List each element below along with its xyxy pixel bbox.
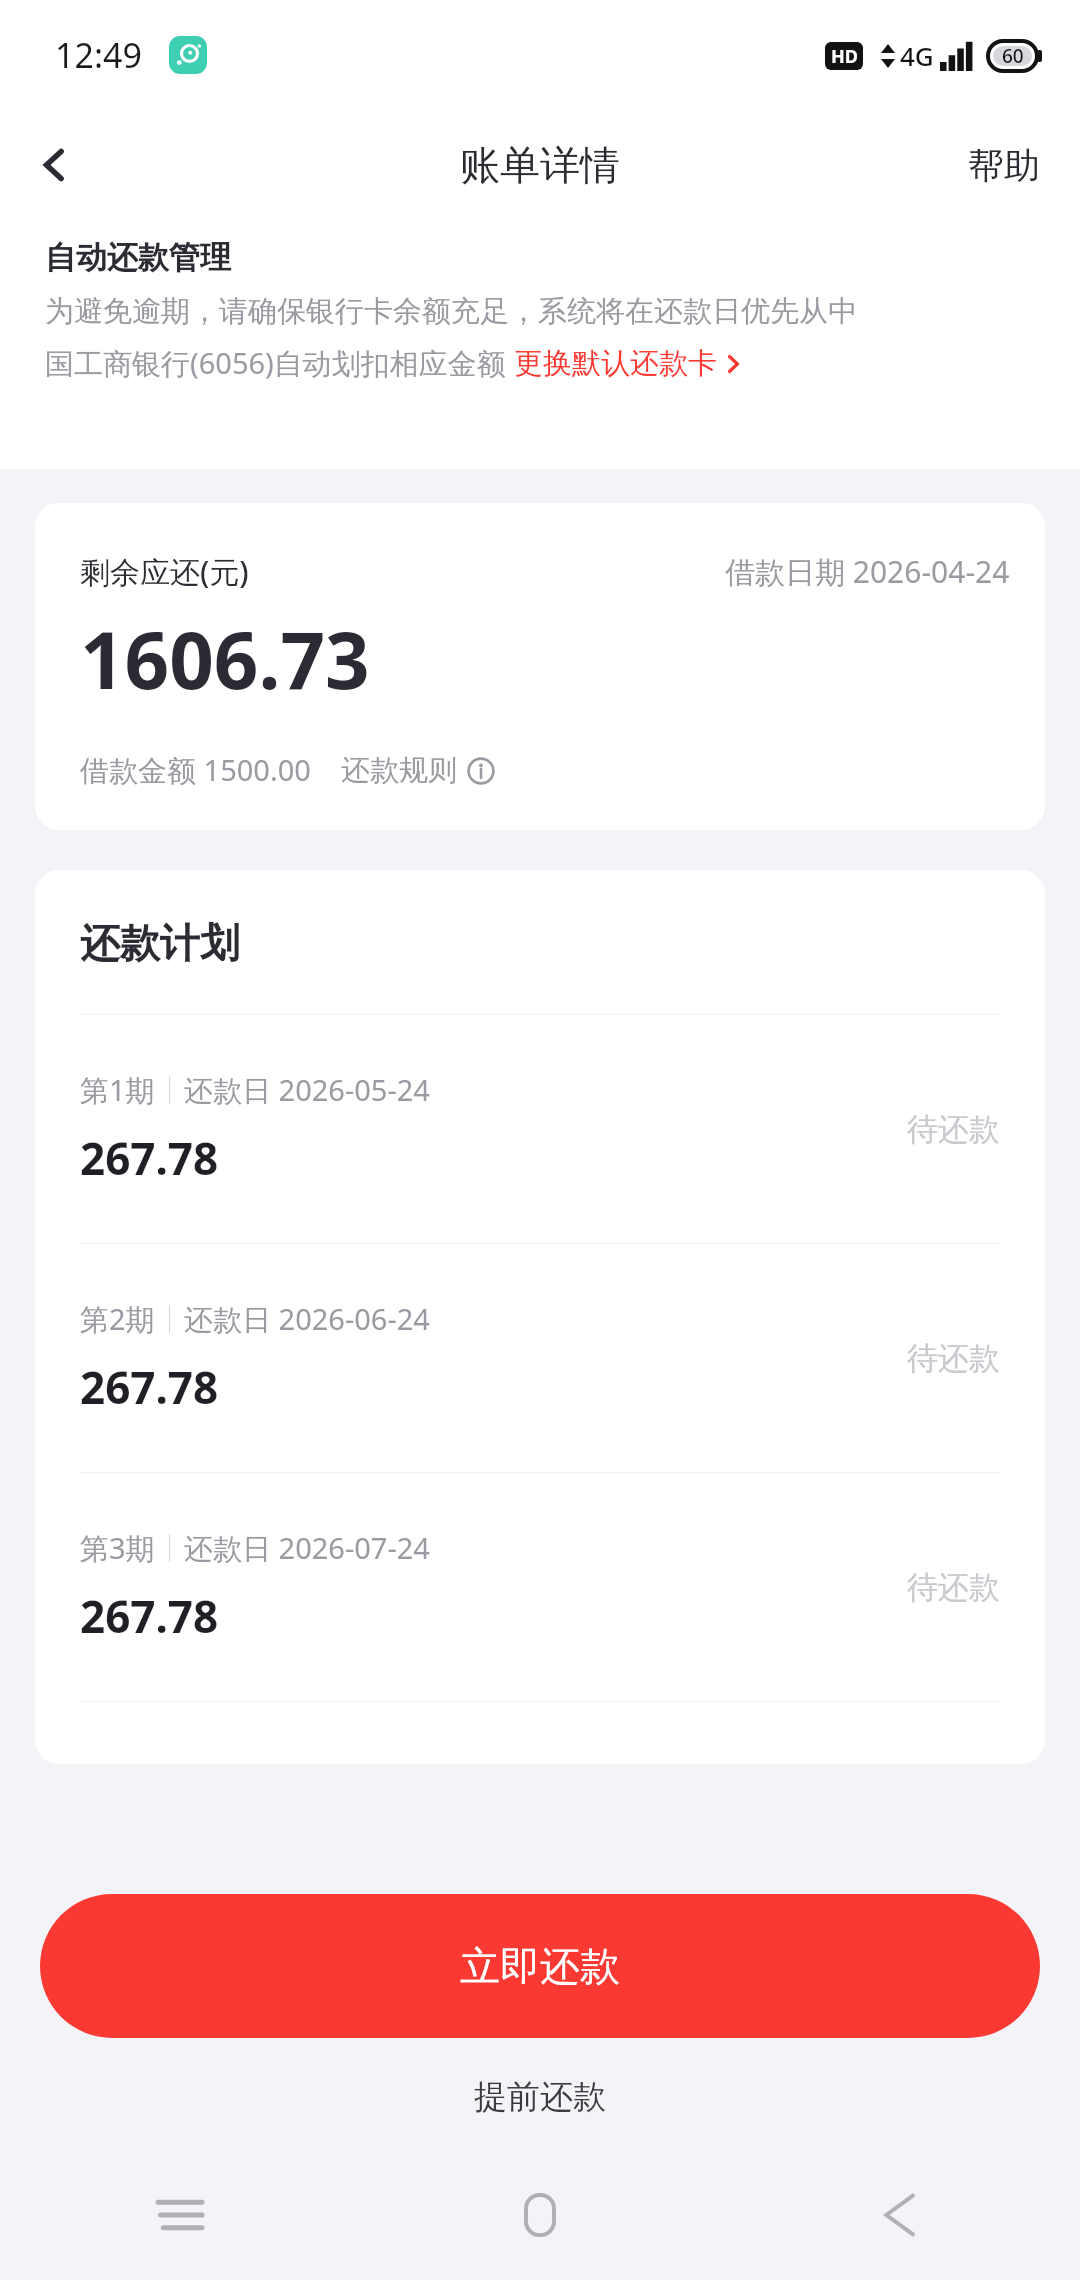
- staticText: 还款规则: [341, 752, 457, 789]
- button[interactable]: Back: [720, 2150, 1080, 2280]
- staticText: 12:49: [55, 32, 142, 78]
- button[interactable]: 帮助: [928, 121, 1080, 210]
- staticText: 自动还款管理: [45, 238, 231, 277]
- staticText: 还款日 2026-07-24: [184, 1528, 430, 1568]
- staticText: 267.78: [80, 1357, 219, 1417]
- staticText: 第3期: [80, 1528, 155, 1568]
- button[interactable]: 第1期: [35, 1015, 1045, 1243]
- button[interactable]: Back: [0, 110, 110, 220]
- staticText: 待还款: [907, 1339, 1000, 1378]
- staticText: 还款日 2026-05-24: [184, 1070, 430, 1110]
- staticText: 为避免逾期，请确保银行卡余额充足，系统将在还款日优先从中: [45, 293, 857, 330]
- staticText: 剩余应还(元): [80, 551, 249, 592]
- button[interactable]: 立即还款: [40, 1894, 1040, 2038]
- staticText: 还款计划: [80, 918, 240, 968]
- staticText: 借款金额 1500.00: [80, 750, 311, 790]
- staticText: 第1期: [80, 1070, 155, 1110]
- staticText: 更换默认还款卡: [514, 345, 717, 382]
- staticText: 还款日 2026-06-24: [184, 1299, 430, 1339]
- button[interactable]: 第2期: [35, 1244, 1045, 1472]
- staticText: 267.78: [80, 1586, 219, 1646]
- staticText: 待还款: [907, 1110, 1000, 1149]
- staticText: HD: [831, 44, 858, 69]
- staticText: 第2期: [80, 1299, 155, 1339]
- staticText: 4G: [900, 38, 934, 73]
- staticText: 1606.73: [80, 606, 370, 712]
- button[interactable]: Recent apps: [0, 2150, 360, 2280]
- button[interactable]: Home: [360, 2150, 720, 2280]
- staticText: 帮助: [968, 143, 1040, 188]
- staticText: 借款日期 2026-04-24: [725, 551, 1010, 592]
- staticText: 立即还款: [460, 1941, 620, 1991]
- button[interactable]: 剩余应还(元): [35, 503, 1045, 830]
- button[interactable]: 第3期: [35, 1473, 1045, 1701]
- staticText: 待还款: [907, 1568, 1000, 1607]
- staticText: 提前还款: [474, 2076, 606, 2118]
- button[interactable]: 还款规则: [341, 752, 495, 789]
- staticText: 国工商银行(6056)自动划扣相应金额: [45, 343, 514, 383]
- staticText: 60: [1002, 43, 1024, 69]
- button[interactable]: 提前还款: [414, 2056, 666, 2138]
- button[interactable]: 更换默认还款卡: [514, 345, 744, 382]
- staticText: 账单详情: [460, 140, 620, 190]
- staticText: 267.78: [80, 1128, 219, 1188]
